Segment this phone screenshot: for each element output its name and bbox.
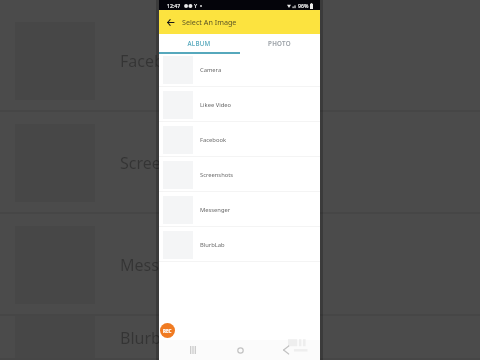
button[interactable]: Likee Video	[159, 87, 320, 122]
button[interactable]: PHOTO	[239, 34, 320, 52]
staticText: Screenshots	[120, 152, 212, 174]
staticText: Messenger	[200, 206, 231, 214]
button[interactable]: BlurbLab	[159, 227, 320, 262]
staticText: BlurbLab	[200, 241, 225, 249]
button[interactable]: Screen recorder	[160, 323, 175, 338]
staticText: 96%	[298, 2, 309, 9]
staticText: ALBUM	[187, 39, 211, 47]
staticText: Facebook	[200, 136, 226, 144]
button[interactable]: Recent apps	[181, 340, 205, 360]
button[interactable]: Home	[228, 340, 252, 360]
button[interactable]: Camera	[159, 52, 320, 87]
staticText: Camera	[200, 66, 222, 74]
staticText: Facebook	[120, 50, 192, 72]
staticText: Likee Video	[200, 101, 231, 109]
staticText: PHOTO	[268, 39, 291, 47]
button[interactable]: Messenger	[159, 192, 320, 227]
staticText: Select An Image	[182, 17, 237, 27]
button[interactable]: ALBUM	[159, 34, 239, 52]
button[interactable]: Facebook	[159, 122, 320, 157]
button[interactable]: Back	[159, 10, 181, 34]
staticText: BlurbLab	[120, 327, 189, 349]
staticText: REC	[163, 328, 172, 334]
staticText: Messenger	[120, 254, 204, 276]
button[interactable]: Screenshots	[159, 157, 320, 192]
button[interactable]: Back	[274, 340, 298, 360]
staticText: 12:47	[167, 2, 181, 9]
staticText: Screenshots	[200, 171, 234, 179]
